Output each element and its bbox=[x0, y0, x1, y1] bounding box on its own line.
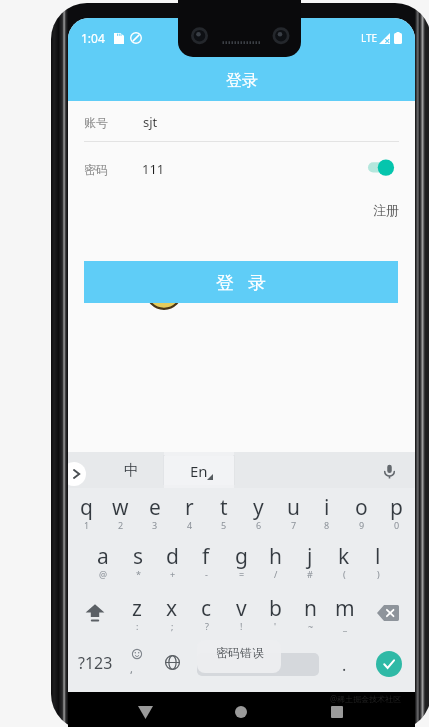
staticText: : bbox=[136, 620, 139, 632]
staticText: n bbox=[304, 594, 317, 623]
button[interactable]: . bbox=[334, 653, 354, 677]
button[interactable]: k bbox=[327, 542, 361, 584]
staticText: q bbox=[80, 493, 93, 522]
button[interactable]: Change language bbox=[160, 650, 184, 674]
staticText: v bbox=[236, 594, 247, 623]
staticText: g bbox=[235, 542, 248, 571]
staticText: z bbox=[132, 594, 142, 623]
staticText: 7 bbox=[291, 519, 297, 531]
staticText: ! bbox=[240, 620, 243, 632]
staticText: 密码 bbox=[84, 162, 108, 177]
staticText: w bbox=[112, 493, 129, 522]
staticText: ) bbox=[377, 568, 380, 580]
staticText: 4 bbox=[187, 519, 193, 531]
staticText: 3 bbox=[152, 519, 158, 531]
staticText: _ bbox=[343, 620, 347, 632]
button[interactable]: a bbox=[86, 542, 120, 584]
button[interactable]: n bbox=[293, 594, 327, 636]
button[interactable]: m bbox=[328, 594, 362, 636]
staticText: 注册 bbox=[373, 202, 399, 218]
button[interactable]: w bbox=[103, 493, 137, 535]
button[interactable]: Emoji bbox=[125, 642, 149, 678]
staticText: * bbox=[136, 568, 141, 580]
staticText: l bbox=[375, 542, 381, 571]
button[interactable]: Show password bbox=[362, 151, 400, 179]
staticText: 账号 bbox=[84, 115, 108, 130]
button[interactable]: j bbox=[293, 542, 327, 584]
button[interactable]: Space bbox=[197, 653, 319, 676]
staticText: j bbox=[307, 542, 313, 571]
staticText: / bbox=[274, 568, 278, 580]
button[interactable]: En bbox=[164, 456, 234, 485]
staticText: c bbox=[201, 594, 212, 623]
button[interactable]: b bbox=[258, 594, 292, 636]
staticText: = bbox=[239, 568, 245, 580]
staticText: 5 bbox=[221, 519, 227, 531]
button[interactable]: 登 录 bbox=[84, 261, 398, 303]
staticText: ~ bbox=[308, 620, 314, 632]
button[interactable]: t bbox=[207, 493, 241, 535]
staticText: 1 bbox=[84, 519, 90, 531]
button[interactable]: 中 bbox=[116, 455, 147, 485]
staticText: ? bbox=[205, 620, 209, 632]
button[interactable]: v bbox=[224, 594, 258, 636]
staticText: . bbox=[342, 654, 347, 676]
button[interactable]: Backspace bbox=[376, 603, 400, 623]
staticText: r bbox=[185, 493, 194, 522]
button[interactable]: y bbox=[241, 493, 275, 535]
button[interactable]: p bbox=[379, 493, 413, 535]
button[interactable]: i bbox=[310, 493, 344, 535]
button[interactable]: q bbox=[69, 493, 103, 535]
button[interactable]: g bbox=[224, 542, 258, 584]
button[interactable]: Expand toolbar bbox=[68, 462, 86, 486]
staticText: 6 bbox=[256, 519, 262, 531]
button[interactable]: Recents bbox=[320, 695, 354, 727]
button[interactable]: d bbox=[155, 542, 189, 584]
staticText: ( bbox=[343, 568, 346, 580]
staticText: u bbox=[287, 493, 300, 522]
staticText: y bbox=[253, 493, 264, 522]
staticText: 密码错误 bbox=[216, 645, 264, 660]
button[interactable]: z bbox=[120, 594, 154, 636]
staticText: t bbox=[220, 493, 228, 522]
button[interactable]: Voice input bbox=[378, 460, 400, 482]
staticText: + bbox=[170, 568, 176, 580]
staticText: ?123 bbox=[78, 652, 113, 674]
staticText: m bbox=[335, 594, 355, 623]
staticText: 中 bbox=[124, 461, 139, 480]
staticText: i bbox=[324, 493, 330, 522]
staticText: @稀土掘金技术社区 bbox=[330, 693, 402, 704]
button[interactable]: c bbox=[189, 594, 223, 636]
staticText: 登 录 bbox=[216, 270, 267, 295]
button[interactable]: h bbox=[258, 542, 292, 584]
button[interactable]: u bbox=[276, 493, 310, 535]
staticText: 9 bbox=[359, 519, 365, 531]
staticText: @ bbox=[99, 568, 108, 580]
staticText: e bbox=[149, 493, 161, 522]
button[interactable]: l bbox=[361, 542, 395, 584]
button[interactable]: o bbox=[344, 493, 378, 535]
staticText: o bbox=[355, 493, 368, 522]
button[interactable]: Home bbox=[224, 695, 258, 727]
staticText: b bbox=[269, 594, 282, 623]
button[interactable]: Enter bbox=[376, 651, 402, 677]
staticText: d bbox=[166, 542, 179, 571]
staticText: h bbox=[269, 542, 282, 571]
button[interactable]: Shift bbox=[78, 596, 112, 630]
staticText: k bbox=[338, 542, 350, 571]
staticText: 1:04 bbox=[81, 30, 105, 46]
staticText: En bbox=[190, 461, 208, 481]
button[interactable]: r bbox=[172, 493, 206, 535]
staticText: - bbox=[205, 568, 208, 580]
button[interactable]: 注册 bbox=[363, 196, 399, 223]
button[interactable]: e bbox=[138, 493, 172, 535]
button[interactable]: ?123 bbox=[72, 650, 118, 676]
button[interactable]: x bbox=[155, 594, 189, 636]
button[interactable]: Back bbox=[128, 695, 162, 727]
staticText: LTE bbox=[361, 31, 378, 45]
staticText: f bbox=[202, 542, 210, 571]
button[interactable]: s bbox=[121, 542, 155, 584]
staticText: x bbox=[166, 594, 178, 623]
staticText: 登录 bbox=[226, 71, 258, 91]
button[interactable]: f bbox=[189, 542, 223, 584]
